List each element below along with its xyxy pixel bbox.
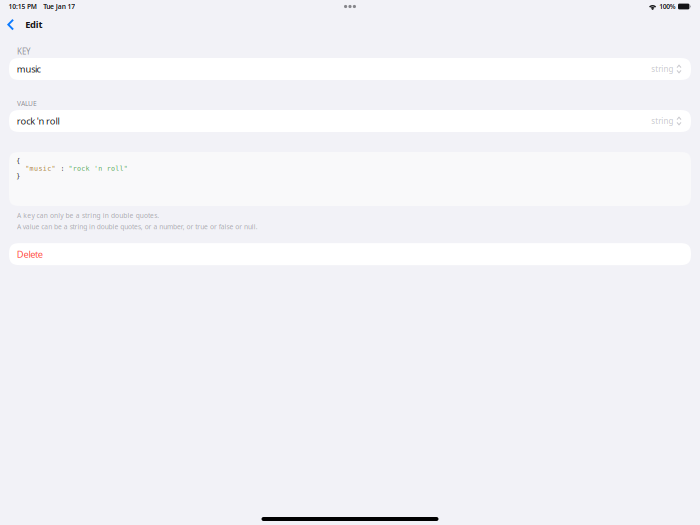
- staticText: Edit: [25, 18, 42, 31]
- staticText: music: [17, 63, 41, 75]
- staticText: A key can only be a string in double quo…: [17, 211, 159, 220]
- staticText: VALUE: [17, 99, 37, 108]
- staticText: Tue Jan 17: [43, 2, 75, 11]
- staticText: Delete: [17, 248, 43, 260]
- staticText: }: [16, 172, 20, 180]
- button[interactable]: Delete: [9, 243, 691, 265]
- staticText: {: [16, 157, 20, 165]
- staticText: 10:15 PM: [8, 2, 37, 11]
- staticText: rock 'n roll: [17, 115, 59, 127]
- staticText: "rock 'n roll": [68, 165, 128, 172]
- staticText: A value can be a string in double quotes…: [17, 222, 258, 231]
- staticText: "music": [25, 165, 56, 172]
- staticText: KEY: [17, 46, 31, 57]
- staticText: string: [651, 64, 673, 74]
- staticText: string: [651, 116, 673, 126]
- button[interactable]: music: [9, 58, 691, 80]
- staticText: 100%: [659, 2, 676, 11]
- button[interactable]: rock 'n roll: [9, 110, 691, 132]
- staticText: :: [56, 165, 68, 172]
- button[interactable]: Back: [0, 12, 25, 36]
